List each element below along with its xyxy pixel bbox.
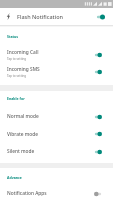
staticText: Advance <box>7 175 22 180</box>
staticText: Tap to setting <box>7 57 27 61</box>
other: Flash <box>6 13 10 20</box>
staticText: Incoming SMS <box>7 66 40 73</box>
staticText: Enable for <box>7 96 25 101</box>
staticText: Incoming Call <box>7 49 39 56</box>
button[interactable]: Vibrate mode <box>0 125 113 143</box>
staticText: Silent mode <box>7 148 35 155</box>
staticText: Flash Notification <box>17 13 96 20</box>
button[interactable]: Normal mode <box>0 108 113 125</box>
button[interactable]: Silent mode <box>0 143 113 160</box>
button[interactable]: Incoming SMS <box>0 63 113 80</box>
staticText: Status <box>7 34 19 39</box>
staticText: Notification Apps <box>7 190 47 197</box>
staticText: Vibrate mode <box>7 131 38 138</box>
button[interactable]: Incoming Call <box>0 46 113 63</box>
button[interactable]: Notification Apps <box>0 187 113 200</box>
staticText: Normal mode <box>7 113 39 120</box>
staticText: Tap to setting <box>7 74 27 78</box>
button[interactable]: Toggle flash notification <box>96 13 105 21</box>
